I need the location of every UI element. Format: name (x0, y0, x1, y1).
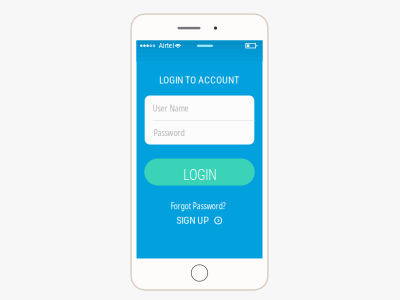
staticText: LOGIN (183, 167, 217, 183)
button[interactable]: SIGN UP (173, 212, 225, 229)
staticText: LOGIN TO ACCOUNT (159, 74, 239, 86)
staticText: Password (153, 127, 184, 139)
button[interactable]: Forgot Password? (166, 197, 229, 215)
staticText: User Name (153, 102, 189, 114)
staticText: Airtel (158, 41, 174, 50)
staticText: SIGN UP (176, 215, 208, 226)
staticText: Forgot Password? (170, 200, 225, 212)
button[interactable]: LOGIN (144, 158, 255, 185)
